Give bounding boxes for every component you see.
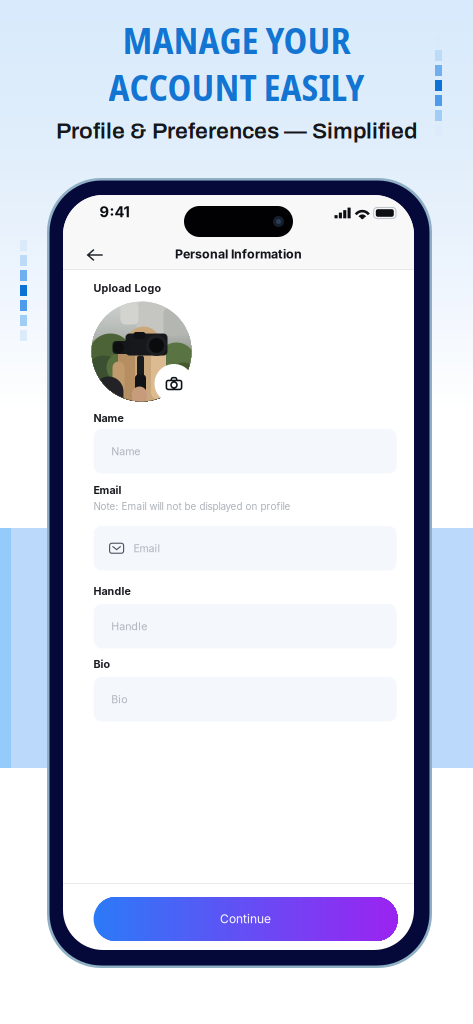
staticText: Email xyxy=(94,483,122,496)
staticText: Personal Information xyxy=(175,246,302,261)
staticText: Bio xyxy=(111,693,127,706)
staticText: Note: Email will not be displayed on pro… xyxy=(94,500,291,512)
button[interactable]: Name xyxy=(94,429,397,473)
staticText: MANAGE YOUR xyxy=(122,15,350,65)
staticText: Handle xyxy=(111,620,147,633)
staticText: Upload Logo xyxy=(94,281,162,294)
button[interactable]: Handle xyxy=(94,604,397,648)
staticText: Name xyxy=(94,411,124,424)
button[interactable]: Continue xyxy=(94,897,398,941)
staticText: Handle xyxy=(94,584,131,597)
button[interactable]: Back xyxy=(76,240,114,270)
button[interactable]: Bio xyxy=(94,677,397,721)
button[interactable]: Change profile photo xyxy=(92,302,194,404)
staticText: Email xyxy=(134,542,161,555)
staticText: Continue xyxy=(220,912,271,926)
button[interactable]: Email xyxy=(94,526,397,570)
staticText: Name xyxy=(111,445,140,458)
staticText: Profile & Preferences — Simplified xyxy=(56,119,417,143)
staticText: 9:41 xyxy=(99,203,129,221)
staticText: Bio xyxy=(94,657,111,670)
staticText: ACCOUNT EASILY xyxy=(108,62,364,112)
